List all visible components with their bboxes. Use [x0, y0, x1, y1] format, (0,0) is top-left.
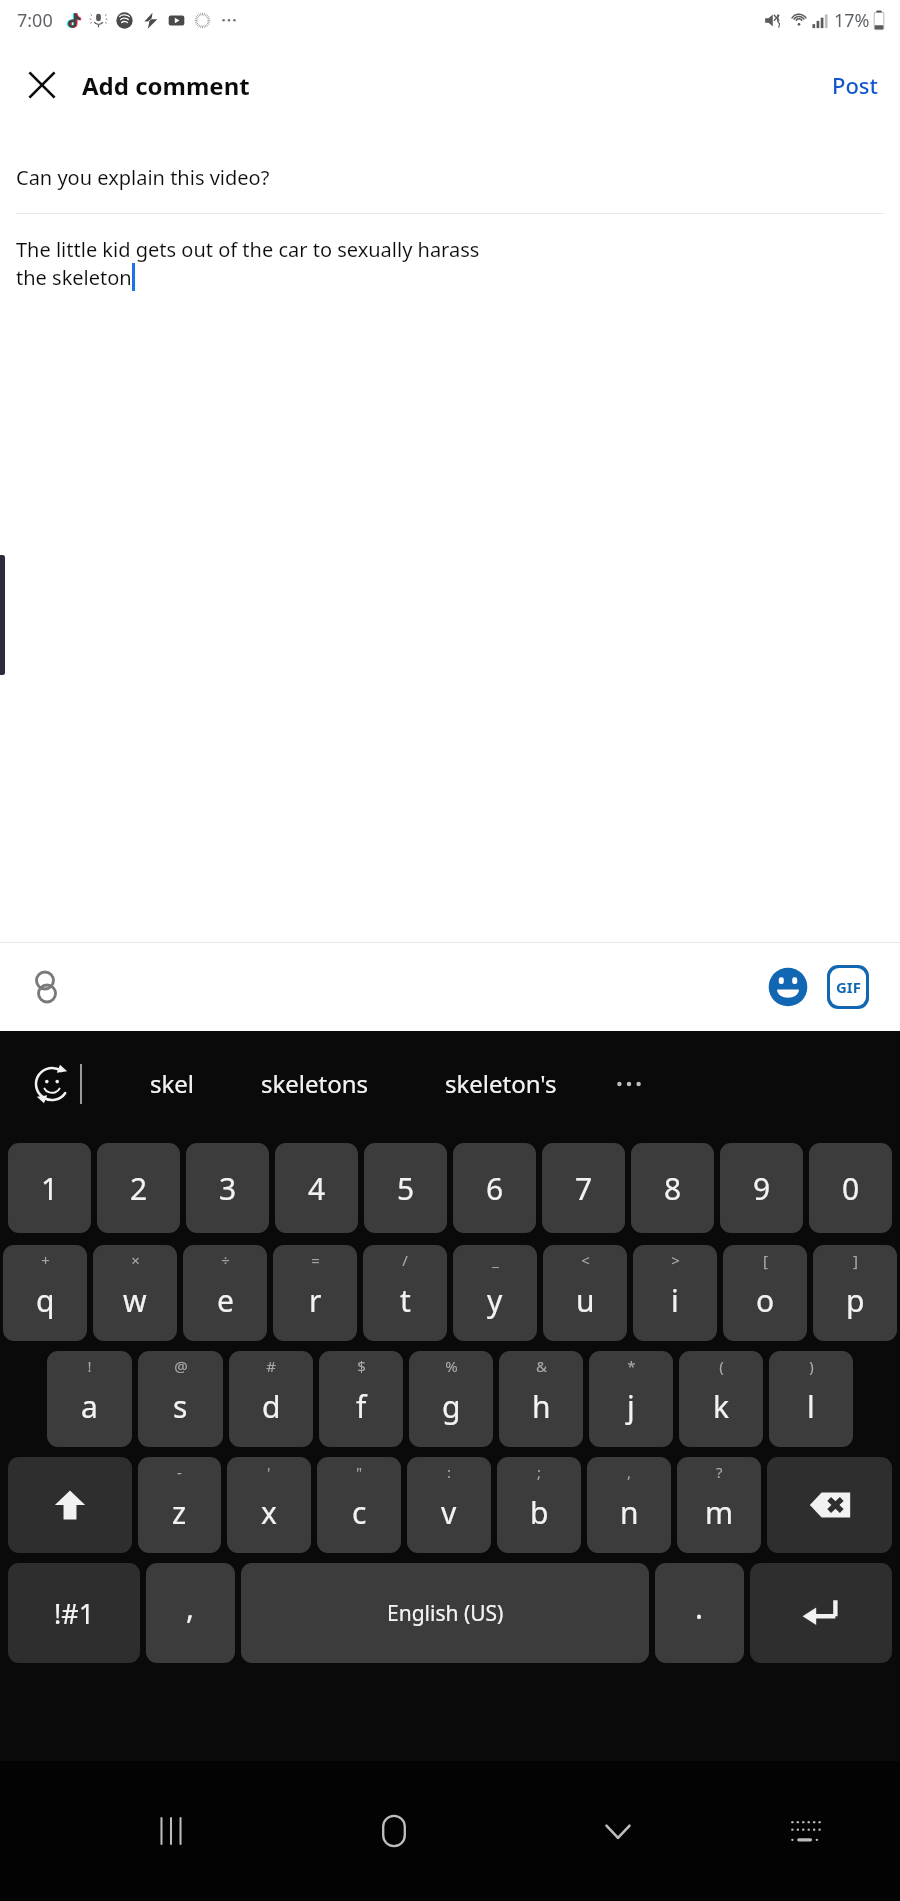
staticText: GIF [836, 977, 861, 997]
button[interactable]: Toggle emoji suggestions [24, 1056, 80, 1112]
button[interactable]: ? [677, 1457, 761, 1553]
button[interactable]: GIF [818, 957, 878, 1017]
button[interactable]: More suggestions [594, 1031, 664, 1136]
staticText: ? [716, 1462, 723, 1482]
button[interactable]: Hide keyboard [578, 1791, 658, 1871]
staticText: Can you explain this video? [16, 164, 270, 191]
staticText: w [123, 1280, 147, 1321]
staticText: n [620, 1492, 639, 1533]
button[interactable]: 0 [809, 1143, 892, 1233]
button[interactable]: 4 [275, 1143, 358, 1233]
button[interactable]: 7 [542, 1143, 625, 1233]
staticText: , [186, 1587, 195, 1628]
button[interactable]: _ [453, 1245, 537, 1341]
button[interactable]: 1 [8, 1143, 91, 1233]
staticText: 7 [575, 1168, 593, 1209]
button[interactable]: ) [769, 1351, 853, 1447]
button[interactable]: Close [14, 57, 70, 113]
staticText: % [445, 1356, 458, 1376]
button[interactable]: 2 [97, 1143, 180, 1233]
button[interactable]: [ [723, 1245, 807, 1341]
button[interactable]: skel [122, 1031, 222, 1136]
button[interactable]: 8 [631, 1143, 714, 1233]
staticText: skeleton's [445, 1067, 557, 1100]
button[interactable]: # [229, 1351, 313, 1447]
button[interactable]: $ [319, 1351, 403, 1447]
button[interactable]: skeletons [222, 1031, 408, 1136]
staticText: 4 [308, 1168, 326, 1209]
staticText: / [402, 1250, 408, 1270]
button[interactable]: Attach link [20, 961, 72, 1013]
button[interactable]: Enter [750, 1563, 892, 1663]
button[interactable]: @ [138, 1351, 223, 1447]
button[interactable]: > [633, 1245, 717, 1341]
staticText: 6 [486, 1168, 504, 1209]
staticText: . [695, 1587, 704, 1628]
button[interactable]: 5 [364, 1143, 447, 1233]
button[interactable]: Emoji [758, 957, 818, 1017]
staticText: c [352, 1492, 367, 1533]
staticText: $ [357, 1356, 366, 1376]
button[interactable]: % [409, 1351, 493, 1447]
button[interactable]: Shift [8, 1457, 132, 1553]
button[interactable]: , [146, 1563, 235, 1663]
staticText: = [311, 1250, 320, 1270]
staticText: skeletons [261, 1067, 369, 1100]
button[interactable]: ' [227, 1457, 311, 1553]
button[interactable]: ] [813, 1245, 897, 1341]
staticText: Post [832, 70, 878, 100]
staticText: " [356, 1462, 363, 1482]
button[interactable]: = [273, 1245, 357, 1341]
button[interactable]: Backspace [767, 1457, 892, 1553]
button[interactable]: ( [679, 1351, 763, 1447]
button[interactable]: ÷ [183, 1245, 267, 1341]
button[interactable]: 3 [186, 1143, 269, 1233]
button[interactable]: & [499, 1351, 583, 1447]
staticText: z [172, 1492, 187, 1533]
staticText: j [627, 1386, 635, 1427]
staticText: l [807, 1386, 815, 1427]
staticText: ! [87, 1356, 92, 1376]
staticText: 5 [397, 1168, 415, 1209]
button[interactable]: Change keyboard [766, 1791, 846, 1871]
button[interactable]: ! [47, 1351, 132, 1447]
button[interactable]: Post [822, 60, 888, 110]
button[interactable]: English (US) [241, 1563, 649, 1663]
button[interactable]: . [655, 1563, 744, 1663]
staticText: g [442, 1386, 461, 1427]
button[interactable]: ; [497, 1457, 581, 1553]
staticText: ; [537, 1462, 542, 1482]
button[interactable]: Recent apps [131, 1791, 211, 1871]
staticText: a [81, 1386, 98, 1427]
staticText: 1 [41, 1168, 59, 1209]
staticText: _ [492, 1250, 499, 1270]
staticText: h [532, 1386, 551, 1427]
button[interactable]: , [587, 1457, 671, 1553]
button[interactable]: Home [354, 1791, 434, 1871]
staticText: t [400, 1280, 411, 1321]
button[interactable]: - [138, 1457, 221, 1553]
button[interactable]: × [93, 1245, 177, 1341]
staticText: i [671, 1280, 679, 1321]
button[interactable]: 6 [453, 1143, 536, 1233]
staticText: - [177, 1462, 182, 1482]
button[interactable]: / [363, 1245, 447, 1341]
button[interactable]: < [543, 1245, 627, 1341]
button[interactable]: : [407, 1457, 491, 1553]
button[interactable]: !#1 [8, 1563, 140, 1663]
staticText: 9 [753, 1168, 771, 1209]
button[interactable]: + [3, 1245, 87, 1341]
staticText: r [309, 1280, 322, 1321]
staticText: u [576, 1280, 595, 1321]
staticText: [ [763, 1250, 768, 1270]
button[interactable]: skeleton's [408, 1031, 594, 1136]
button[interactable]: 9 [720, 1143, 803, 1233]
staticText: the skeleton [16, 264, 132, 291]
staticText: < [581, 1250, 590, 1270]
staticText: ' [267, 1462, 271, 1482]
staticText: * [627, 1356, 636, 1376]
button[interactable]: " [317, 1457, 401, 1553]
staticText: Add comment [82, 69, 250, 102]
button[interactable]: * [589, 1351, 673, 1447]
staticText: f [356, 1386, 367, 1427]
